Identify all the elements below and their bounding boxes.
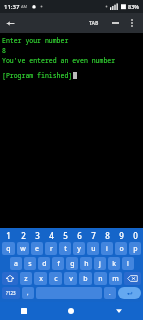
button[interactable]: q — [2, 242, 15, 255]
button[interactable]: i — [101, 242, 113, 255]
staticText: e — [35, 244, 39, 254]
button[interactable]: More options — [123, 14, 141, 32]
staticText: z — [24, 274, 28, 284]
button[interactable]: p — [129, 242, 141, 255]
button[interactable]: k — [108, 257, 120, 270]
button[interactable]: o — [115, 242, 127, 255]
staticText: You've entered an even number — [2, 56, 116, 65]
button[interactable]: Shift — [2, 272, 18, 285]
button[interactable]: v — [64, 272, 77, 285]
staticText: 1 — [6, 230, 11, 241]
staticText: TAB — [89, 20, 99, 27]
button[interactable]: d — [38, 257, 50, 270]
staticText: k — [112, 259, 116, 269]
staticText: x — [39, 274, 43, 284]
button[interactable]: . — [104, 287, 116, 299]
staticText: b — [83, 274, 88, 284]
button[interactable]: l — [122, 257, 134, 270]
button[interactable]: , — [22, 287, 34, 299]
button[interactable]: 5 — [58, 230, 72, 241]
staticText: 8 — [105, 230, 110, 241]
button[interactable]: h — [80, 257, 92, 270]
staticText: AM — [21, 4, 28, 9]
staticText: 8 — [2, 46, 6, 55]
button[interactable]: 9 — [114, 230, 128, 241]
button[interactable]: Backspace — [124, 272, 141, 285]
staticText: ?123 — [6, 290, 16, 296]
staticText: q — [6, 244, 11, 254]
staticText: [Program finished] — [2, 71, 73, 80]
button[interactable]: 4 — [44, 230, 58, 241]
staticText: a — [14, 259, 18, 269]
staticText: y — [77, 244, 81, 254]
button[interactable]: u — [87, 242, 99, 255]
staticText: i — [106, 244, 108, 254]
staticText: p — [133, 244, 138, 254]
button[interactable]: ?123 — [2, 287, 20, 299]
button[interactable]: z — [20, 272, 32, 285]
staticText: r — [50, 244, 53, 254]
staticText: 11:37 — [4, 3, 20, 11]
staticText: w — [20, 244, 26, 254]
staticText: d — [42, 259, 47, 269]
staticText: 5 — [63, 230, 68, 241]
staticText: 2 — [21, 230, 26, 241]
button[interactable]: Home — [47, 302, 95, 320]
button[interactable]: j — [94, 257, 106, 270]
staticText: m — [112, 274, 119, 284]
button[interactable]: s — [24, 257, 36, 270]
button[interactable]: 7 — [86, 230, 100, 241]
staticText: Enter your number — [2, 36, 69, 45]
button[interactable]: b — [79, 272, 92, 285]
button[interactable]: e — [31, 242, 43, 255]
button[interactable]: Minimize — [107, 15, 123, 31]
button[interactable]: 6 — [72, 230, 86, 241]
button[interactable]: x — [34, 272, 47, 285]
button[interactable]: r — [45, 242, 57, 255]
staticText: 83% — [128, 3, 139, 10]
staticText: u — [91, 244, 96, 254]
staticText: 4 — [49, 230, 54, 241]
staticText: g — [70, 259, 75, 269]
staticText: h — [84, 259, 89, 269]
staticText: 7 — [91, 230, 96, 241]
button[interactable]: n — [94, 272, 107, 285]
button[interactable]: a — [10, 257, 22, 270]
staticText: c — [54, 274, 58, 284]
button[interactable]: 8 — [100, 230, 114, 241]
button[interactable]: t — [59, 242, 71, 255]
button[interactable]: TAB — [85, 17, 103, 30]
staticText: . — [109, 289, 111, 297]
button[interactable]: Enter — [118, 287, 141, 299]
staticText: 9 — [119, 230, 124, 241]
button[interactable]: 0 — [128, 230, 142, 241]
staticText: o — [119, 244, 124, 254]
button[interactable]: f — [52, 257, 64, 270]
button[interactable]: 2 — [16, 230, 30, 241]
staticText: 0 — [133, 230, 138, 241]
staticText: f — [57, 259, 60, 269]
button[interactable]: Back — [0, 13, 20, 33]
staticText: n — [98, 274, 103, 284]
staticText: s — [28, 259, 32, 269]
button[interactable]: 1 — [1, 230, 16, 241]
staticText: l — [127, 259, 129, 269]
staticText: 6 — [77, 230, 82, 241]
button[interactable]: m — [109, 272, 122, 285]
button[interactable]: w — [17, 242, 29, 255]
staticText: v — [69, 274, 73, 284]
button[interactable]: 3 — [30, 230, 44, 241]
staticText: 3 — [35, 230, 40, 241]
staticText: , — [27, 289, 29, 297]
staticText: t — [64, 244, 67, 254]
button[interactable]: c — [49, 272, 62, 285]
button[interactable]: Back — [95, 302, 143, 320]
button[interactable]: y — [73, 242, 85, 255]
button[interactable]: Recents — [0, 302, 47, 320]
staticText: j — [99, 259, 101, 269]
button[interactable]: g — [66, 257, 78, 270]
